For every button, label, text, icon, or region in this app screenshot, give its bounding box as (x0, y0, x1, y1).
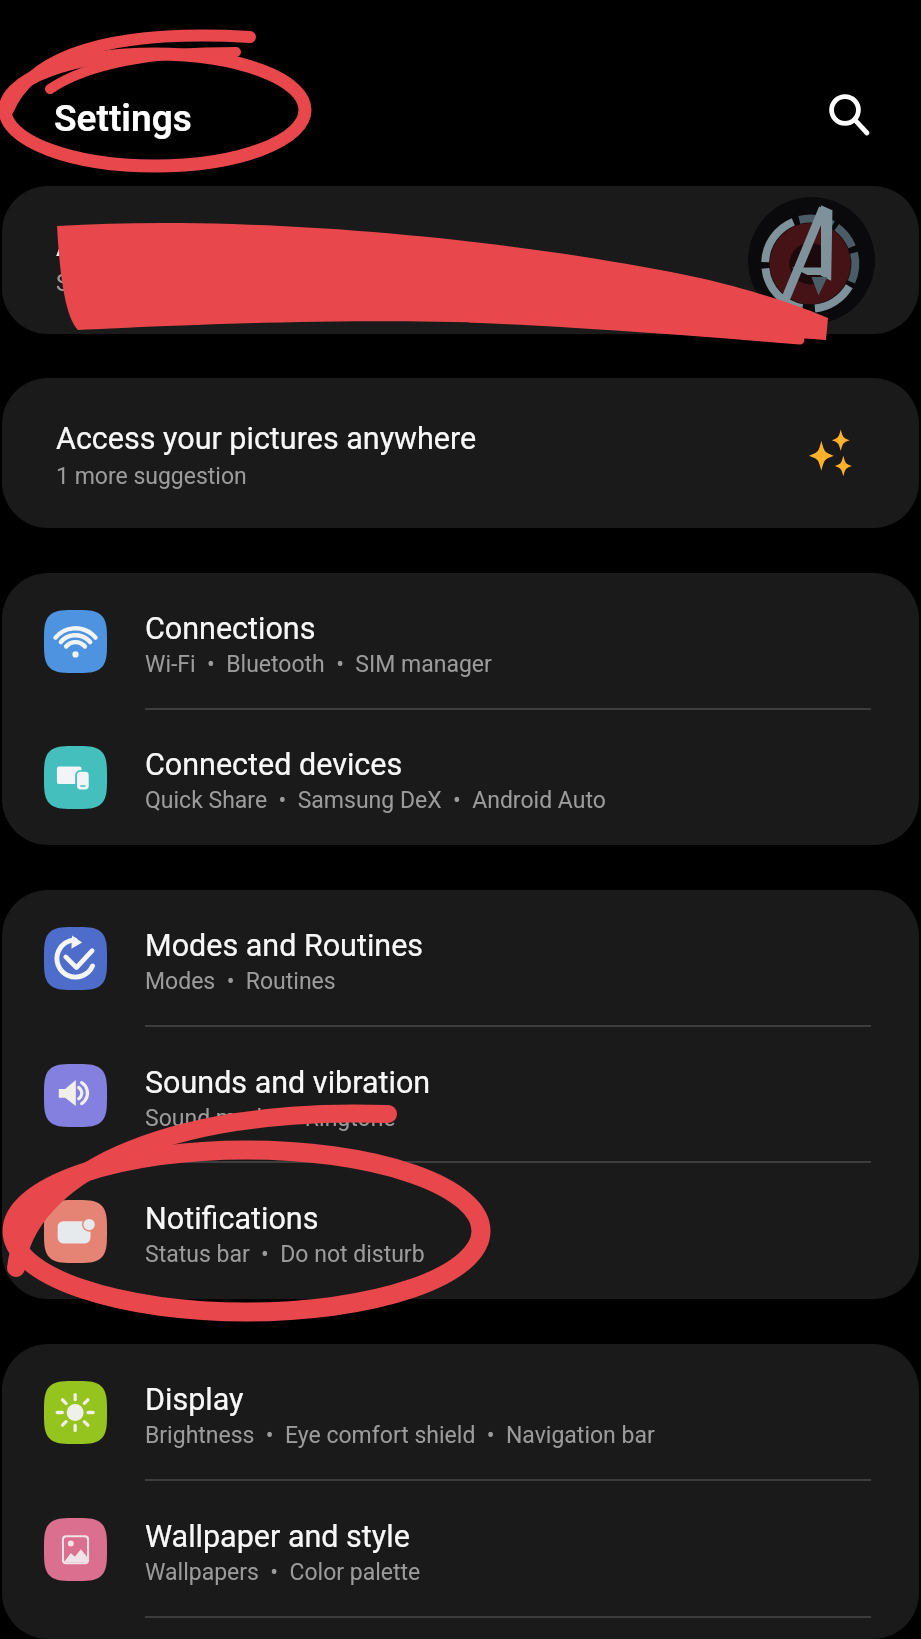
staticText: Wallpaper and style (145, 1519, 410, 1555)
staticText: Quick Share • Samsung DeX • Android Auto (145, 787, 606, 814)
staticText: Wallpapers • Color palette (145, 1559, 421, 1586)
button[interactable]: Display (2, 1344, 919, 1481)
button[interactable]: Sounds and vibration (2, 1027, 919, 1163)
staticText: Modes and Routines (145, 928, 424, 964)
staticText: Access your pictures anywhere (56, 421, 477, 457)
staticText: Brightness • Eye comfort shield • Naviga… (145, 1422, 655, 1449)
staticText: Wi-Fi • Bluetooth • SIM manager (145, 651, 492, 678)
staticText: Samsung account (56, 270, 241, 297)
button[interactable]: Search (797, 62, 893, 158)
button[interactable]: Modes and Routines (2, 890, 919, 1027)
staticText: 1 more suggestion (56, 463, 247, 490)
staticText: Display (145, 1382, 244, 1418)
button[interactable]: Connected devices (2, 710, 919, 845)
button[interactable]: Wallpaper and style (2, 1481, 919, 1618)
button[interactable]: Alex Anderson (2, 186, 919, 334)
staticText: Notifications (145, 1201, 319, 1237)
staticText: Connections (145, 611, 316, 647)
staticText: Status bar • Do not disturb (145, 1241, 425, 1268)
button[interactable]: Notifications (2, 1163, 919, 1299)
button[interactable]: Connections (2, 573, 919, 710)
staticText: Alex Anderson (56, 228, 253, 264)
staticText: Modes • Routines (145, 968, 336, 995)
staticText: Connected devices (145, 747, 403, 783)
staticText: Sounds and vibration (145, 1065, 431, 1101)
staticText: Sound mode • Ringtone (145, 1105, 396, 1132)
button[interactable]: Access your pictures anywhere (2, 378, 919, 528)
staticText: Settings (54, 97, 192, 140)
